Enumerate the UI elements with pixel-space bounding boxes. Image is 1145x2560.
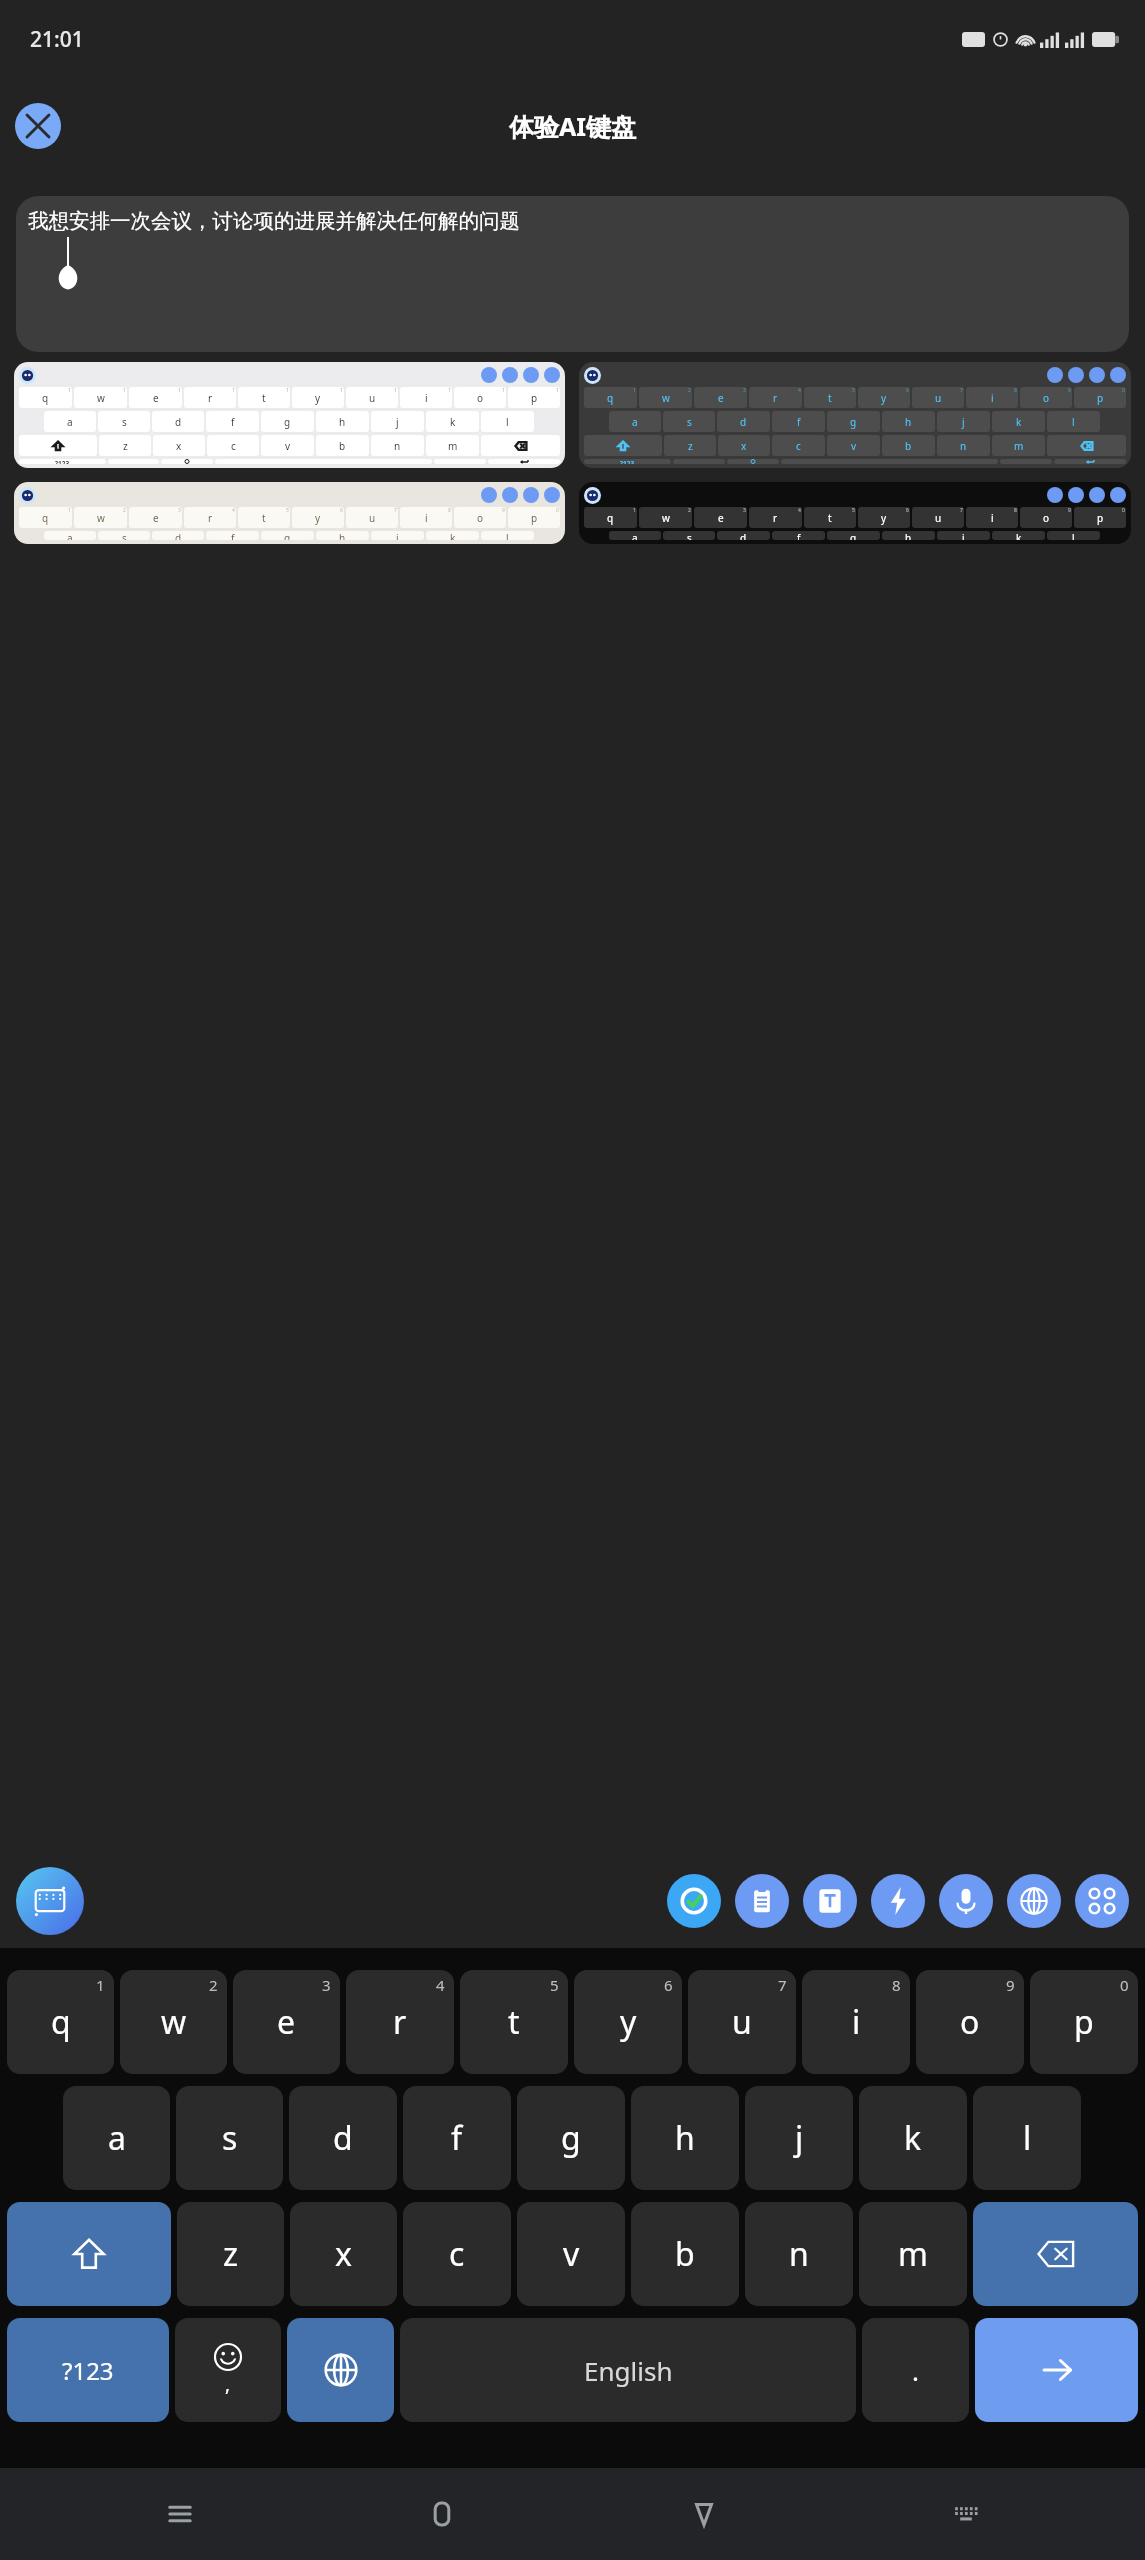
button[interactable]: 2	[120, 1970, 227, 2074]
staticText: 1	[123, 387, 126, 394]
button[interactable]: 8	[802, 1970, 910, 2074]
staticText: p	[1074, 2000, 1094, 2044]
button[interactable]: z	[177, 2202, 284, 2306]
button[interactable]: Voice	[939, 1874, 993, 1928]
button[interactable]: k	[859, 2086, 967, 2190]
button[interactable]: 5	[460, 1970, 568, 2074]
button[interactable]: c	[403, 2202, 511, 2306]
button[interactable]: a	[63, 2086, 170, 2190]
staticText: 5	[550, 1975, 559, 1995]
button[interactable]: Language	[287, 2318, 394, 2422]
staticText: 4	[232, 507, 235, 514]
button[interactable]: Enter	[975, 2318, 1138, 2422]
button[interactable]: 1	[579, 362, 1131, 468]
staticText: t	[262, 391, 266, 405]
staticText: a	[632, 531, 638, 540]
button[interactable]: 6	[574, 1970, 682, 2074]
button[interactable]: v	[517, 2202, 625, 2306]
button[interactable]: Back	[668, 2478, 740, 2550]
button[interactable]: AI keyboard	[16, 1867, 84, 1935]
button[interactable]: More	[1075, 1874, 1129, 1928]
staticText: 7	[394, 507, 397, 514]
staticText: r	[773, 391, 778, 405]
staticText: k	[1016, 415, 1022, 429]
staticText: a	[67, 415, 73, 429]
staticText: 3	[178, 507, 181, 514]
button[interactable]: English	[400, 2318, 856, 2422]
staticText: q	[607, 511, 614, 525]
button[interactable]: g	[517, 2086, 625, 2190]
button[interactable]: Backspace	[973, 2202, 1138, 2306]
button[interactable]: Text	[803, 1874, 857, 1928]
button[interactable]: Close	[15, 103, 61, 149]
button[interactable]: l	[973, 2086, 1081, 2190]
staticText: e	[153, 391, 159, 405]
button[interactable]: m	[859, 2202, 967, 2306]
button[interactable]: f	[403, 2086, 511, 2190]
staticText: e	[277, 2000, 296, 2044]
staticText: 1	[394, 387, 397, 394]
button[interactable]: n	[745, 2202, 853, 2306]
button[interactable]: x	[290, 2202, 397, 2306]
staticText: e	[718, 511, 724, 525]
button[interactable]: s	[176, 2086, 283, 2190]
button[interactable]: 7	[688, 1970, 796, 2074]
staticText: h	[675, 2116, 695, 2160]
staticText: 2	[123, 507, 126, 514]
staticText: p	[531, 391, 538, 405]
button[interactable]: Keyboard	[930, 2478, 1002, 2550]
button[interactable]: j	[745, 2086, 853, 2190]
button[interactable]: 3	[233, 1970, 340, 2074]
staticText: i	[852, 2000, 861, 2044]
button[interactable]: h	[631, 2086, 739, 2190]
button[interactable]: Shift	[7, 2202, 171, 2306]
button[interactable]: Done	[667, 1874, 721, 1928]
staticText: u	[369, 511, 376, 525]
staticText: 0	[1122, 507, 1125, 514]
staticText: 7	[778, 1975, 787, 1995]
button[interactable]: 1	[14, 482, 565, 544]
button[interactable]: ?123	[7, 2318, 169, 2422]
button[interactable]: Menu	[144, 2478, 216, 2550]
staticText: y	[881, 391, 887, 405]
staticText: 1	[340, 387, 343, 394]
staticText: x	[741, 439, 747, 453]
button[interactable]: Language	[1007, 1874, 1061, 1928]
button[interactable]: 1	[7, 1970, 114, 2074]
staticText: h	[905, 531, 912, 540]
staticText: g	[284, 531, 291, 540]
button[interactable]: 9	[916, 1970, 1024, 2074]
button[interactable]: Quick	[871, 1874, 925, 1928]
staticText: 1	[286, 387, 289, 394]
staticText: 1	[68, 507, 71, 514]
button[interactable]: .	[862, 2318, 969, 2422]
button[interactable]: 1	[14, 362, 565, 468]
button[interactable]: d	[289, 2086, 397, 2190]
staticText: 2	[688, 507, 691, 514]
staticText: d	[175, 531, 182, 540]
button[interactable]: 4	[346, 1970, 454, 2074]
button[interactable]: 1	[579, 482, 1131, 544]
staticText: p	[1097, 391, 1104, 405]
button[interactable]: b	[631, 2202, 739, 2306]
button[interactable]: Emoji	[175, 2318, 281, 2422]
staticText: 4	[798, 387, 801, 394]
staticText: y	[315, 391, 321, 405]
staticText: English	[584, 2353, 673, 2388]
staticText: v	[851, 439, 857, 453]
button[interactable]: Clipboard	[735, 1874, 789, 1928]
button[interactable]: 我想安排一次会议，讨论项的进展并解决任何解的问题	[16, 196, 1129, 352]
staticText: w	[662, 391, 670, 405]
staticText: 0	[556, 507, 559, 514]
button[interactable]: 0	[1030, 1970, 1138, 2074]
staticText: u	[732, 2000, 752, 2044]
staticText: w	[161, 2000, 187, 2044]
staticText: x	[176, 439, 182, 453]
staticText: j	[795, 2116, 804, 2160]
staticText: n	[789, 2232, 809, 2276]
staticText: r	[773, 511, 778, 525]
button[interactable]: Home	[406, 2478, 478, 2550]
staticText: e	[153, 511, 159, 525]
staticText: y	[315, 511, 321, 525]
